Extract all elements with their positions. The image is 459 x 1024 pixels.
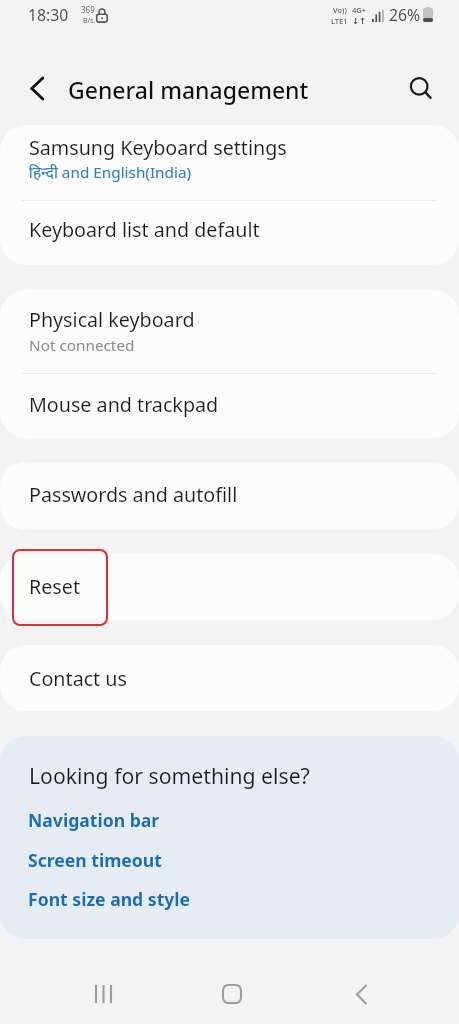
button[interactable] <box>0 645 459 711</box>
button[interactable] <box>0 290 459 373</box>
button[interactable] <box>0 462 459 530</box>
staticText: B/s <box>83 16 94 26</box>
button[interactable] <box>0 845 180 881</box>
staticText: General management <box>68 74 309 105</box>
button[interactable] <box>0 125 459 200</box>
button[interactable]: Recents <box>73 964 133 1024</box>
staticText: Navigation bar <box>28 808 160 832</box>
staticText: Keyboard list and default <box>29 216 260 243</box>
button[interactable]: Search <box>399 67 443 111</box>
staticText: 369 <box>81 4 95 15</box>
staticText: 26% <box>389 4 421 26</box>
staticText: Looking for something else? <box>29 761 310 790</box>
button[interactable] <box>0 200 459 265</box>
button[interactable]: Home <box>202 964 262 1024</box>
button[interactable] <box>0 884 180 920</box>
staticText: Contact us <box>29 665 127 692</box>
staticText: ↓↑ <box>352 16 367 26</box>
staticText: Reset <box>29 573 80 600</box>
staticText: Screen timeout <box>28 848 162 872</box>
button[interactable]: Back <box>331 964 391 1024</box>
staticText: 18:30 <box>28 4 69 26</box>
staticText: हिन्दी and English(India) <box>29 162 192 183</box>
button[interactable] <box>0 554 459 620</box>
staticText: LTE1 <box>331 16 348 26</box>
staticText: Mouse and trackpad <box>29 391 219 418</box>
button[interactable]: Navigate up <box>14 67 58 111</box>
staticText: Samsung Keyboard settings <box>29 134 287 161</box>
staticText: Vo)) <box>333 5 347 15</box>
button[interactable] <box>0 805 180 841</box>
staticText: Not connected <box>29 335 135 356</box>
staticText: 4G+ <box>352 5 367 15</box>
button[interactable] <box>0 373 459 438</box>
staticText: Physical keyboard <box>29 306 195 333</box>
staticText: Passwords and autofill <box>29 481 238 508</box>
staticText: Font size and style <box>28 887 191 911</box>
